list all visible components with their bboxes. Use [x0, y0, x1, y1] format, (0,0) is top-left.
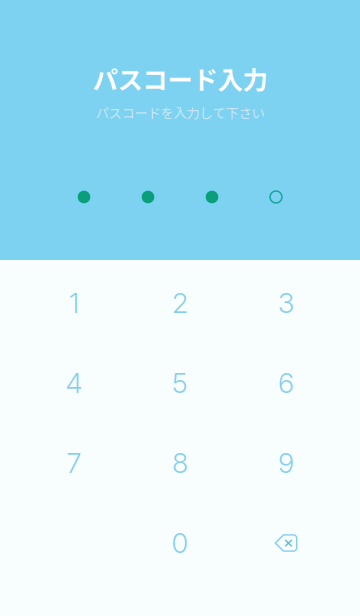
button[interactable]: 8 — [127, 423, 233, 503]
button[interactable]: 9 — [233, 423, 339, 503]
staticText: 6 — [278, 366, 294, 400]
staticText: 0 — [171, 526, 188, 560]
staticText: 1 — [69, 286, 79, 320]
button[interactable]: 3 — [233, 263, 339, 343]
button[interactable]: 1 — [21, 263, 127, 343]
staticText: パスコード入力 — [92, 60, 267, 97]
button[interactable]: 6 — [233, 343, 339, 423]
staticText: パスコードを入力して下さい — [95, 103, 264, 122]
button[interactable]: 5 — [127, 343, 233, 423]
staticText: 8 — [172, 446, 188, 480]
button[interactable]: 7 — [21, 423, 127, 503]
staticText: 5 — [172, 366, 188, 400]
button[interactable]: Delete — [233, 503, 339, 583]
button[interactable]: 4 — [21, 343, 127, 423]
staticText: 7 — [66, 446, 81, 480]
staticText: 3 — [278, 286, 294, 320]
button[interactable]: 0 — [127, 503, 233, 583]
staticText: 2 — [172, 286, 188, 320]
staticText: 4 — [65, 366, 82, 400]
button[interactable]: 2 — [127, 263, 233, 343]
staticText: 9 — [278, 446, 294, 480]
